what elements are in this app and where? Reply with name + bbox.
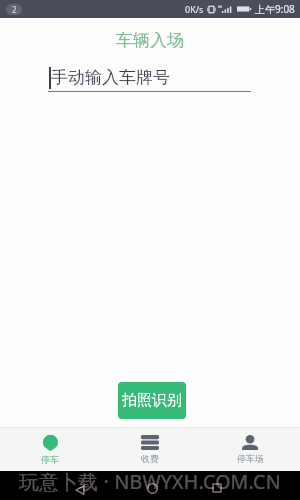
button[interactable]: 拍照识别 (118, 382, 186, 419)
staticText: 停车场 (237, 453, 264, 464)
staticText: 手动输入车牌号 (51, 67, 170, 88)
staticText: 上午9:08 (255, 2, 295, 16)
button[interactable]: 停车场 (200, 428, 300, 471)
staticText: 车辆入场 (116, 30, 184, 48)
button[interactable]: 停车 (0, 428, 100, 471)
staticText: 0K/s (185, 3, 204, 15)
button[interactable]: Home (147, 483, 158, 494)
button[interactable]: 收费 (100, 428, 200, 471)
staticText: 拍照识别 (122, 391, 182, 410)
staticText: 2 (12, 4, 17, 15)
staticText: 收费 (141, 453, 159, 464)
button[interactable]: Back (74, 484, 86, 496)
button[interactable]: Recents (212, 483, 222, 493)
staticText: 玩意卜载 · NBWYXH.COM.CN (19, 468, 281, 495)
staticText: 停车 (41, 454, 59, 465)
